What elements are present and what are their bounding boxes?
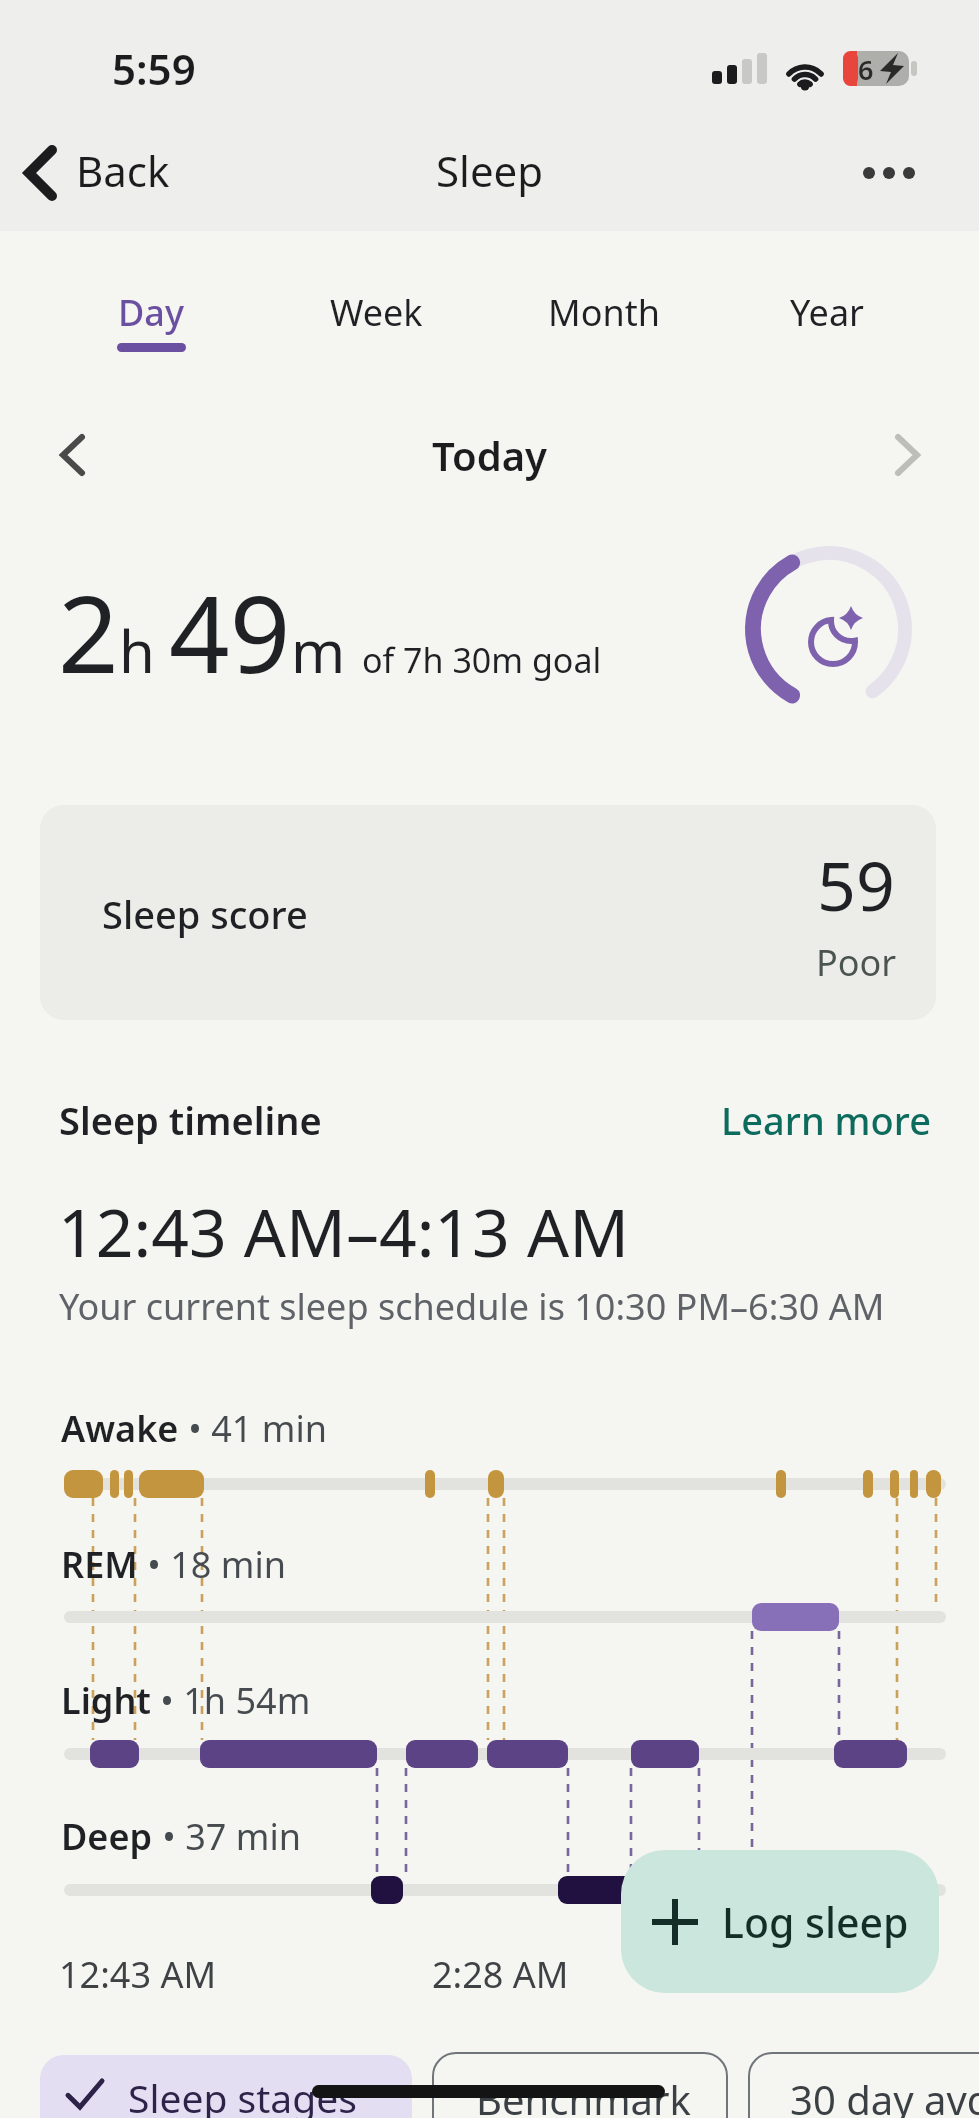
staticText: 30 day avg <box>790 2072 979 2118</box>
staticText: • 41 min <box>179 1404 327 1453</box>
button[interactable]: Sleep stages <box>40 2055 412 2118</box>
staticText: Sleep score <box>102 888 308 940</box>
staticText: 2 <box>58 560 119 704</box>
staticText: Deep <box>61 1812 153 1861</box>
staticText: h <box>119 611 155 690</box>
button[interactable]: Week <box>310 270 445 360</box>
button[interactable] <box>870 425 940 485</box>
staticText: m <box>291 611 346 690</box>
staticText: Sleep timeline <box>59 1094 322 1146</box>
staticText: Light <box>61 1676 151 1725</box>
staticText: Day <box>118 288 184 337</box>
staticText: Poor <box>816 938 897 987</box>
staticText: Sleep <box>436 142 544 199</box>
staticText: Learn more <box>721 1094 931 1146</box>
staticText: Month <box>548 288 660 337</box>
button[interactable]: Learn more <box>721 1094 931 1146</box>
button[interactable] <box>848 140 928 204</box>
staticText: 12:43 AM–4:13 AM <box>58 1186 630 1276</box>
staticText: 49 <box>169 560 291 704</box>
staticText: Today <box>432 428 547 482</box>
staticText: Year <box>790 288 864 337</box>
button[interactable]: Year <box>770 270 885 360</box>
button[interactable] <box>40 805 936 1020</box>
staticText: Week <box>330 288 423 337</box>
staticText: REM <box>61 1540 138 1589</box>
staticText: Your current sleep schedule is 10:30 PM–… <box>59 1282 885 1331</box>
button[interactable]: 30 day avg <box>748 2052 979 2118</box>
button[interactable]: Log sleep <box>621 1850 939 1993</box>
staticText: Sleep stages <box>128 2071 357 2118</box>
staticText: 5:59 <box>112 40 196 97</box>
button[interactable]: Back <box>16 138 186 208</box>
staticText: 12:43 AM <box>59 1950 217 1999</box>
button[interactable]: Month <box>528 270 678 360</box>
staticText: Awake <box>61 1404 179 1453</box>
button[interactable]: Benchmark <box>432 2052 728 2118</box>
staticText: 2:28 AM <box>432 1950 569 1999</box>
staticText: • 1h 54m <box>151 1676 311 1725</box>
staticText: Back <box>76 142 170 199</box>
staticText: of 7h 30m goal <box>362 637 602 683</box>
staticText: Log sleep <box>722 1894 909 1950</box>
button[interactable]: Day <box>90 270 215 360</box>
staticText: • 37 min <box>153 1812 301 1861</box>
staticText: 59 <box>817 838 895 931</box>
staticText: • 18 min <box>138 1540 286 1589</box>
button[interactable] <box>40 425 110 485</box>
staticText: Benchmark <box>476 2072 691 2118</box>
staticText: 6 <box>858 51 874 88</box>
